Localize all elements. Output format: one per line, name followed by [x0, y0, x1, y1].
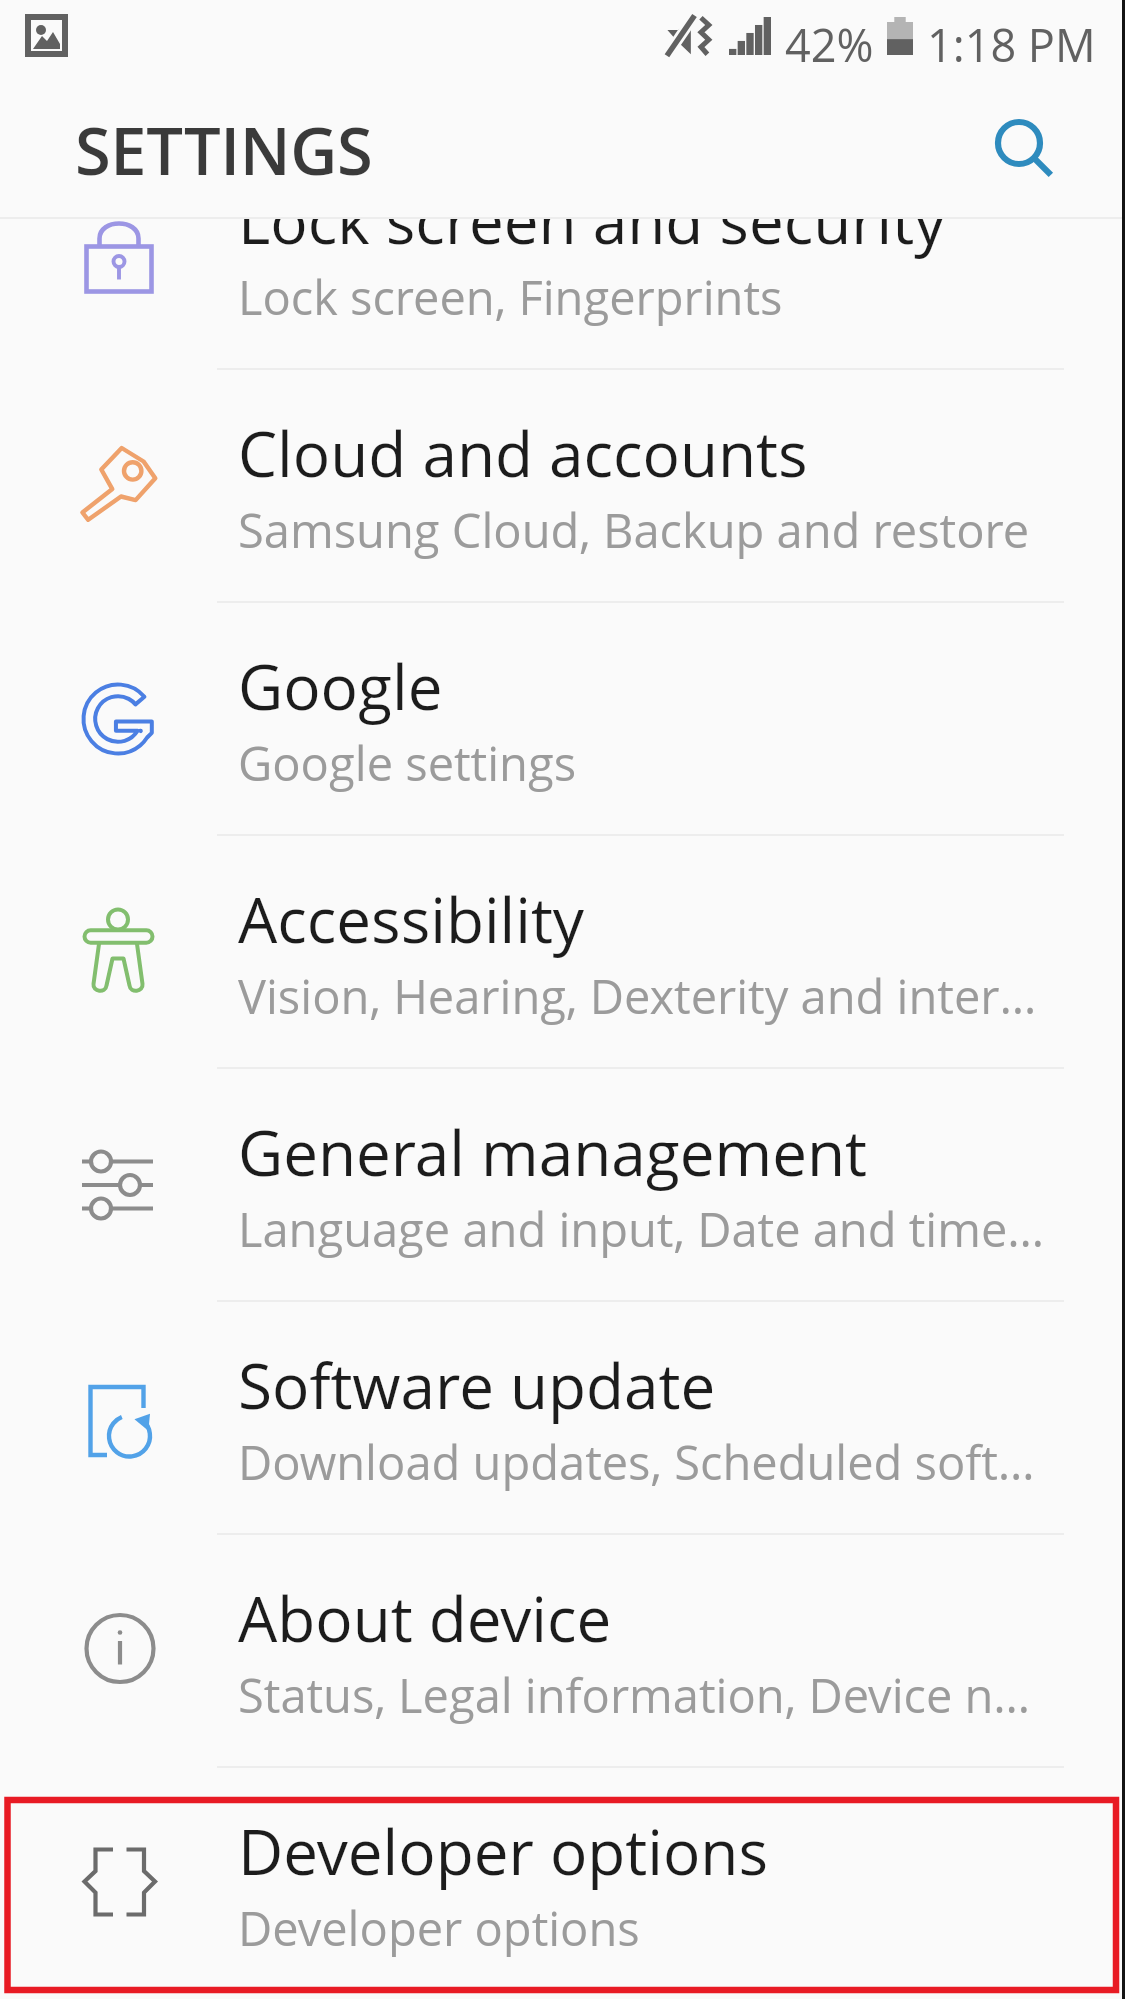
- staticText: Google: [238, 644, 443, 728]
- staticText: Download updates, Scheduled soft…: [238, 1430, 1035, 1494]
- staticText: Language and input, Date and time…: [238, 1197, 1045, 1261]
- staticText: Developer options: [238, 1896, 640, 1960]
- staticText: Cloud and accounts: [238, 411, 808, 495]
- staticText: Vision, Hearing, Dexterity and inter…: [238, 964, 1037, 1028]
- staticText: SETTINGS: [75, 106, 373, 195]
- button[interactable]: Software update: [0, 1302, 1125, 1533]
- staticText: Accessibility: [238, 877, 585, 961]
- button[interactable]: Accessibility: [0, 836, 1125, 1067]
- staticText: Software update: [238, 1343, 716, 1427]
- button[interactable]: About device: [0, 1535, 1125, 1766]
- button[interactable]: General management: [0, 1069, 1125, 1300]
- staticText: Developer options: [238, 1809, 768, 1893]
- staticText: 1:18 PM: [927, 14, 1096, 75]
- staticText: Lock screen, Fingerprints: [238, 265, 783, 329]
- staticText: Lock screen and security: [238, 219, 946, 262]
- button[interactable]: Lock screen and security: [0, 219, 1125, 368]
- button[interactable]: Google: [0, 603, 1125, 834]
- button[interactable]: Developer options: [0, 1768, 1125, 1999]
- staticText: Status, Legal information, Device n…: [238, 1663, 1031, 1727]
- staticText: Google settings: [238, 731, 577, 795]
- staticText: About device: [238, 1576, 612, 1660]
- staticText: Samsung Cloud, Backup and restore: [238, 498, 1030, 562]
- button[interactable]: Search: [975, 99, 1071, 187]
- button[interactable]: Cloud and accounts: [0, 370, 1125, 601]
- staticText: General management: [238, 1110, 867, 1194]
- staticText: 42%: [785, 14, 874, 75]
